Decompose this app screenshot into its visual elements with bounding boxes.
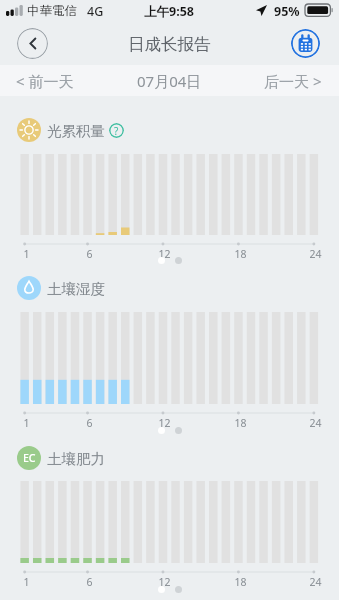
staticText: 18 xyxy=(234,247,247,261)
button[interactable]: Back xyxy=(17,28,48,59)
button[interactable]: < 前一天 xyxy=(0,65,112,96)
button[interactable]: Help xyxy=(109,123,124,138)
staticText: 上午9:58 xyxy=(144,3,194,20)
staticText: 24 xyxy=(309,416,322,430)
staticText: ? xyxy=(114,124,119,138)
staticText: 6 xyxy=(86,247,93,261)
button[interactable]: Calendar xyxy=(291,29,320,58)
staticText: 日成长报告 xyxy=(128,34,211,55)
staticText: < 前一天 xyxy=(16,71,74,91)
staticText: 07月04日 xyxy=(137,71,202,91)
staticText: 土壤湿度 xyxy=(47,280,105,298)
staticText: 12 xyxy=(158,416,171,430)
button[interactable]: 后一天 > xyxy=(227,65,339,96)
staticText: 4G xyxy=(87,3,104,20)
staticText: 6 xyxy=(86,575,93,589)
staticText: 18 xyxy=(234,416,247,430)
staticText: 中華電信 xyxy=(27,3,77,19)
staticText: 土壤肥力 xyxy=(47,450,105,468)
staticText: 12 xyxy=(158,575,171,589)
staticText: 24 xyxy=(309,575,322,589)
staticText: 12 xyxy=(158,247,171,261)
staticText: 1 xyxy=(23,575,30,589)
staticText: 18 xyxy=(234,575,247,589)
staticText: 95% xyxy=(274,3,300,20)
staticText: 1 xyxy=(23,247,30,261)
staticText: 6 xyxy=(86,416,93,430)
staticText: 后一天 > xyxy=(264,71,322,91)
staticText: 1 xyxy=(23,416,30,430)
staticText: 光累积量 xyxy=(47,122,105,140)
staticText: 24 xyxy=(309,247,322,261)
staticText: EC xyxy=(23,451,36,465)
